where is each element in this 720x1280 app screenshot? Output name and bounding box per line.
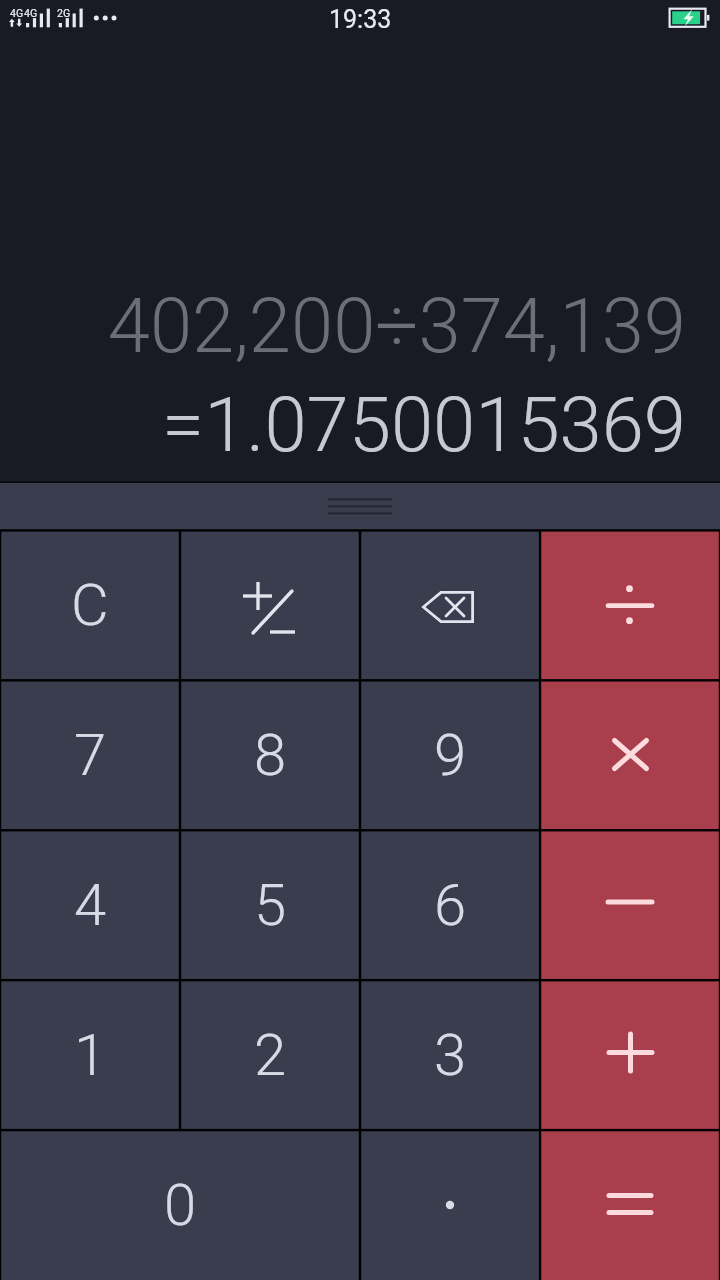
- button[interactable]: Multiply: [540, 680, 720, 830]
- button[interactable]: 0: [0, 1130, 360, 1280]
- staticText: 4G: [24, 7, 38, 19]
- staticText: 2: [254, 1021, 287, 1089]
- button[interactable]: Decimal point: [360, 1130, 540, 1280]
- staticText: 1: [74, 1021, 107, 1089]
- button[interactable]: 7: [0, 680, 180, 830]
- staticText: 9: [434, 721, 467, 789]
- staticText: 4: [74, 871, 107, 939]
- button[interactable]: 4: [0, 830, 180, 980]
- button[interactable]: 2: [180, 980, 360, 1130]
- staticText: 4G: [10, 7, 24, 19]
- staticText: =1.0750015369: [162, 380, 686, 469]
- staticText: 7: [74, 721, 107, 789]
- button[interactable]: Plus: [540, 980, 720, 1130]
- staticText: 5: [254, 871, 287, 939]
- button[interactable]: Expand history: [0, 483, 720, 530]
- staticText: 19:33: [329, 5, 392, 34]
- button[interactable]: Equals: [540, 1130, 720, 1280]
- button[interactable]: Backspace: [360, 530, 540, 680]
- button[interactable]: Divide: [540, 530, 720, 680]
- button[interactable]: C: [0, 530, 180, 680]
- staticText: 0: [164, 1171, 197, 1239]
- button[interactable]: 3: [360, 980, 540, 1130]
- staticText: 6: [434, 871, 467, 939]
- button[interactable]: 1: [0, 980, 180, 1130]
- button[interactable]: 8: [180, 680, 360, 830]
- button[interactable]: 6: [360, 830, 540, 980]
- button[interactable]: 5: [180, 830, 360, 980]
- button[interactable]: 9: [360, 680, 540, 830]
- staticText: C: [71, 571, 109, 639]
- staticText: 2G: [57, 7, 71, 19]
- staticText: 402,200÷374,139: [107, 281, 686, 370]
- staticText: 8: [254, 721, 287, 789]
- button[interactable]: Toggle sign: [180, 530, 360, 680]
- staticText: 3: [434, 1021, 467, 1089]
- button[interactable]: Minus: [540, 830, 720, 980]
